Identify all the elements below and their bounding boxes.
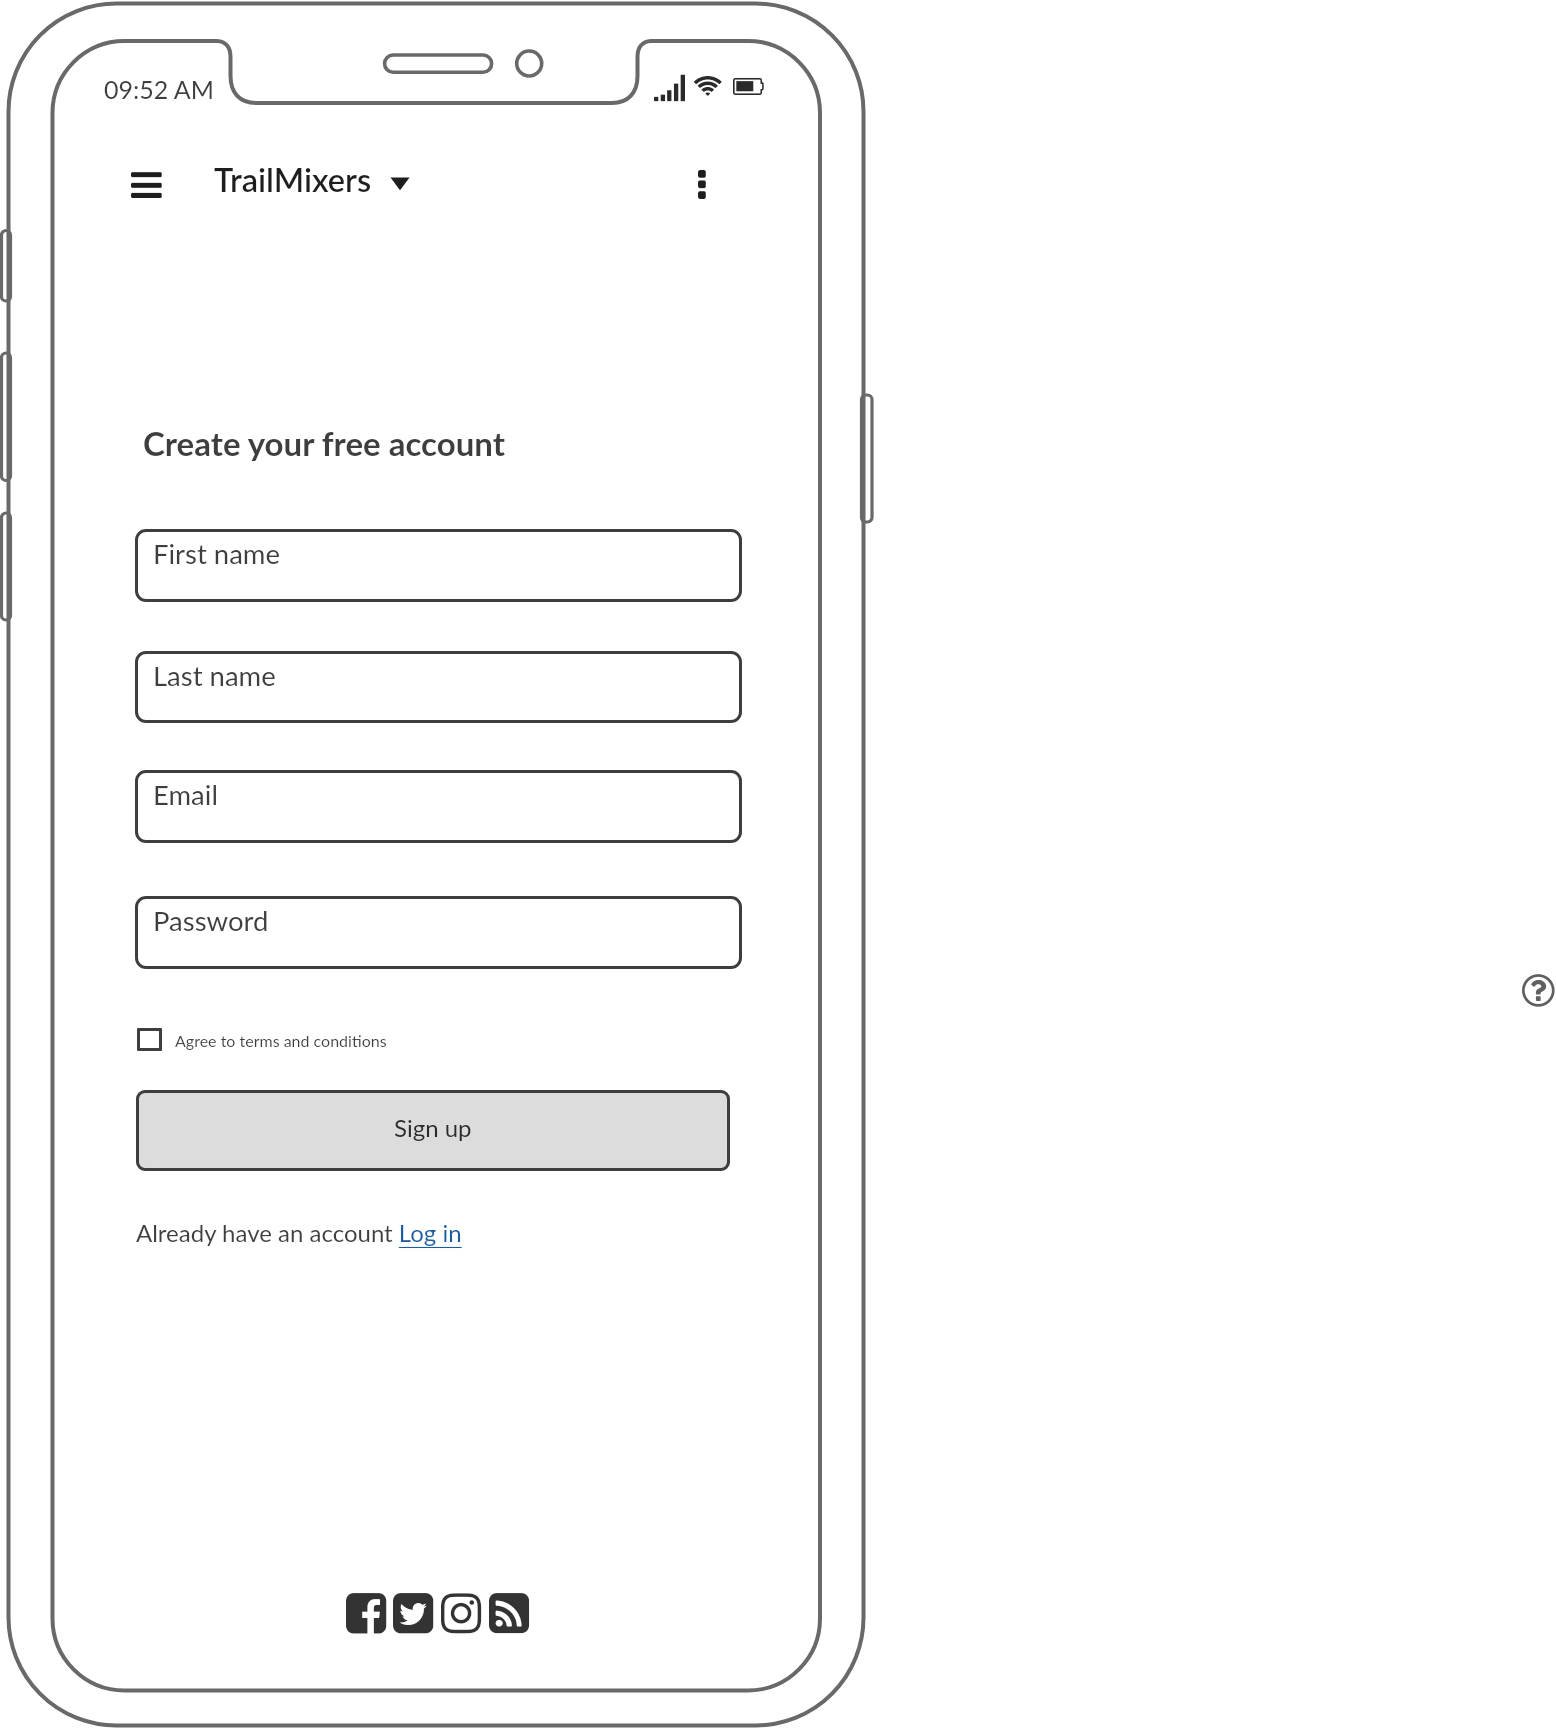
button[interactable]: 	[489, 1590, 530, 1635]
staticText: Already have an account Log in	[136, 1218, 462, 1247]
button[interactable]: 	[1520, 971, 1556, 1009]
staticText: 	[489, 1590, 530, 1635]
staticText: Password	[153, 904, 269, 937]
button[interactable]: 	[121, 160, 171, 210]
button[interactable]: TrailMixers	[214, 155, 414, 203]
staticText: 	[346, 1590, 387, 1635]
button[interactable]: 	[441, 1590, 482, 1635]
staticText: 	[1522, 971, 1555, 1009]
staticText: 	[654, 72, 686, 103]
staticText: 	[693, 74, 723, 100]
staticText: First name	[153, 537, 280, 570]
button[interactable]: Already have an account Log in	[136, 1215, 466, 1255]
staticText: Create your free account	[143, 423, 505, 463]
staticText: 	[698, 167, 706, 204]
button[interactable]: Agree to terms and conditions	[137, 1023, 417, 1055]
staticText: 	[131, 167, 162, 203]
button[interactable]: 	[681, 158, 723, 208]
staticText: Agree to terms and conditions	[175, 1031, 387, 1050]
staticText: 	[733, 74, 764, 98]
staticText: Email	[153, 778, 218, 811]
button[interactable]: 	[393, 1590, 434, 1635]
staticText: 	[441, 1590, 482, 1635]
staticText: 09:52 AM	[104, 74, 214, 104]
staticText: TrailMixers	[214, 160, 372, 199]
staticText: Last name	[153, 659, 276, 692]
button[interactable]: Password	[135, 896, 742, 969]
button[interactable]: Email	[135, 770, 742, 843]
staticText: Sign up	[394, 1113, 472, 1142]
button[interactable]: Last name	[135, 651, 742, 723]
staticText: 	[393, 1590, 434, 1635]
button[interactable]: 	[346, 1590, 387, 1635]
button[interactable]: Sign up	[136, 1090, 730, 1171]
button[interactable]: First name	[135, 529, 742, 602]
